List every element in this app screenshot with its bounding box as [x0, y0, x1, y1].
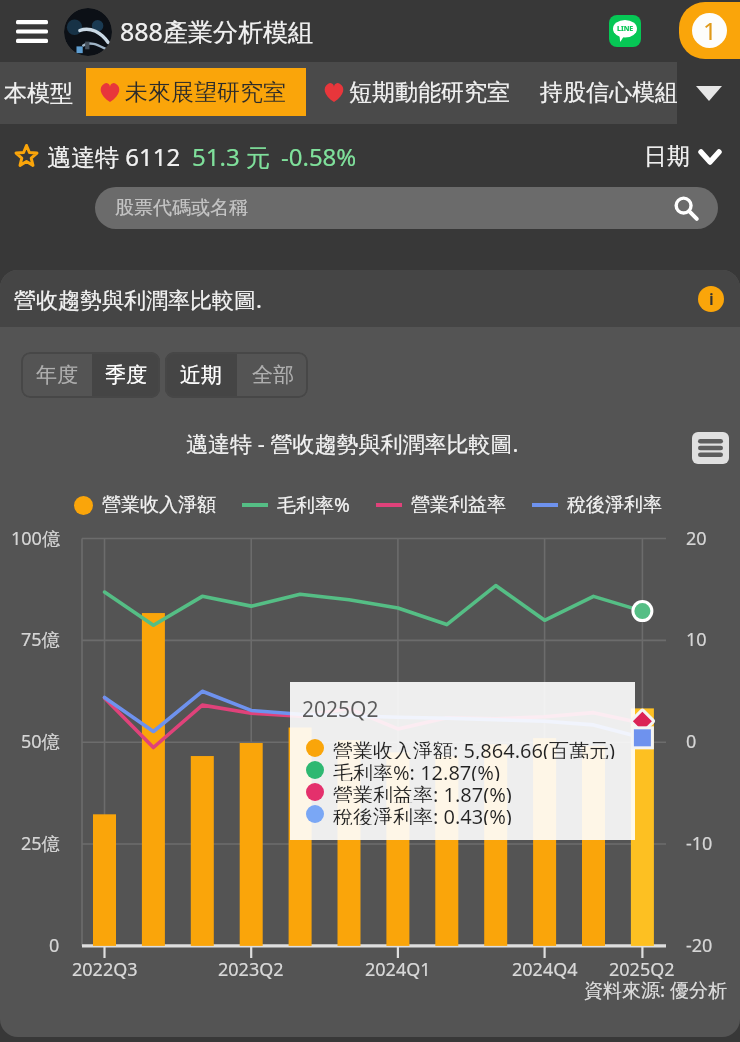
- staticText: 稅後淨利率: [567, 493, 662, 517]
- staticText: 2025Q2: [302, 695, 379, 724]
- staticText: 75億: [21, 627, 60, 652]
- button[interactable]: More tabs: [677, 62, 740, 124]
- staticText: 季度: [105, 362, 147, 388]
- staticText: 營業收入淨額: 5,864.66(百萬元): [333, 737, 615, 759]
- staticText: -0.58%: [281, 140, 357, 173]
- button[interactable]: LINE: [609, 15, 641, 47]
- staticText: 0: [49, 933, 60, 958]
- staticText: 本模型: [4, 79, 73, 108]
- staticText: 50億: [21, 729, 60, 754]
- staticText: -10: [686, 831, 713, 856]
- staticText: 毛利率%: [277, 492, 350, 518]
- staticText: 邁達特 6112: [47, 140, 181, 173]
- button[interactable]: 持股信心模組: [540, 68, 678, 116]
- button[interactable]: Chart menu: [692, 432, 729, 464]
- button[interactable]: Menu: [8, 7, 56, 55]
- staticText: 2022Q3: [72, 957, 138, 982]
- staticText: 近期: [180, 362, 222, 388]
- staticText: i: [709, 288, 714, 310]
- button[interactable]: 未來展望研究室: [86, 68, 306, 116]
- staticText: 20: [686, 526, 707, 551]
- staticText: 邁達特 - 營收趨勢與利潤率比較圖.: [186, 428, 519, 458]
- staticText: 1: [703, 14, 717, 47]
- staticText: 營業利益率: 1.87(%): [333, 781, 512, 803]
- staticText: 2025Q2: [609, 957, 675, 982]
- staticText: 稅後淨利率: 0.43(%): [333, 803, 512, 825]
- staticText: 2024Q1: [365, 957, 431, 982]
- staticText: 25億: [21, 831, 60, 856]
- button[interactable]: Info: [698, 286, 724, 312]
- button[interactable]: 短期動能研究室: [322, 68, 510, 116]
- staticText: -20: [686, 933, 713, 958]
- staticText: 營收趨勢與利潤率比較圖.: [14, 284, 262, 314]
- button[interactable]: 全部: [237, 352, 308, 398]
- staticText: 51.3 元: [192, 140, 270, 173]
- staticText: 0: [686, 729, 697, 754]
- button[interactable]: 季度: [92, 352, 160, 398]
- staticText: 10: [686, 627, 707, 652]
- button[interactable]: 股票代碼或名稱: [95, 187, 718, 229]
- staticText: 100億: [11, 526, 60, 551]
- staticText: LINE: [617, 24, 634, 34]
- staticText: 資料來源: 優分析: [584, 977, 728, 1003]
- staticText: 未來展望研究室: [125, 78, 286, 107]
- staticText: 年度: [36, 362, 78, 388]
- staticText: 2023Q2: [218, 957, 284, 982]
- button[interactable]: 年度: [21, 352, 92, 398]
- staticText: 毛利率%: 12.87(%): [333, 759, 500, 781]
- staticText: 2024Q4: [512, 957, 578, 982]
- button[interactable]: 本模型: [4, 68, 73, 118]
- staticText: 營業收入淨額: [102, 493, 216, 517]
- button[interactable]: 1: [679, 2, 740, 59]
- staticText: 持股信心模組: [540, 78, 678, 107]
- staticText: 股票代碼或名稱: [115, 196, 248, 220]
- staticText: 日期: [644, 142, 690, 171]
- staticText: 全部: [252, 362, 294, 388]
- staticText: 短期動能研究室: [349, 78, 510, 107]
- staticText: 888產業分析模組: [120, 14, 313, 48]
- button[interactable]: 近期: [165, 352, 237, 398]
- staticText: 營業利益率: [411, 493, 506, 517]
- button[interactable]: 日期: [644, 142, 722, 171]
